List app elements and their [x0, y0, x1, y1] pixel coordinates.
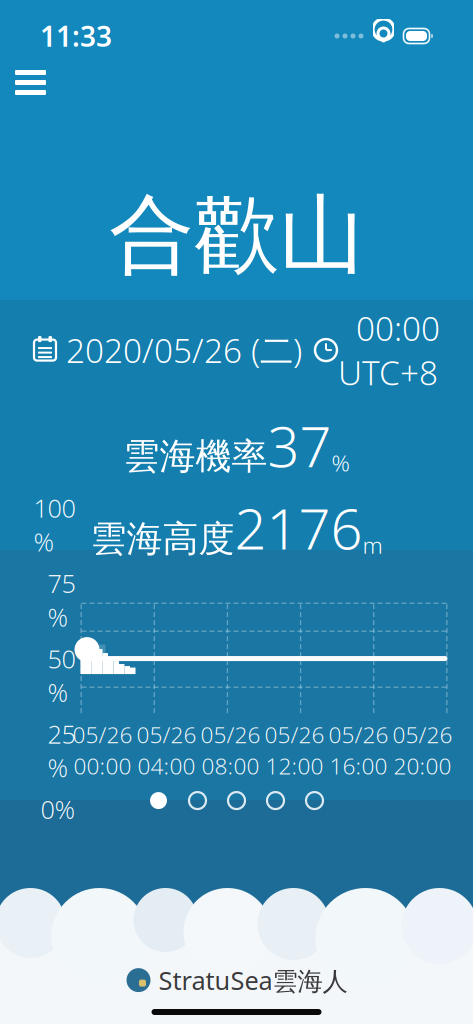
staticText: 20:00: [393, 751, 451, 781]
staticText: 雲海機率: [123, 434, 267, 479]
staticText: 50%: [47, 642, 75, 709]
staticText: 25%: [47, 717, 75, 784]
staticText: 05/26: [392, 719, 452, 750]
staticText: 00:00: [73, 751, 131, 781]
staticText: 2176: [234, 491, 362, 565]
button[interactable]: Page 3: [228, 792, 245, 809]
staticText: 0%: [40, 792, 75, 826]
staticText: 2020/05/26 (二): [57, 328, 302, 372]
staticText: 11:33: [40, 17, 112, 55]
staticText: 100%: [33, 491, 75, 558]
staticText: 08:00: [201, 751, 259, 781]
button[interactable]: Page 1: [150, 792, 167, 809]
staticText: m: [362, 530, 382, 560]
button[interactable]: Page 2: [189, 792, 206, 809]
staticText: 16:00: [329, 751, 387, 781]
staticText: %: [331, 448, 349, 478]
staticText: 04:00: [137, 751, 195, 781]
staticText: 05/26: [328, 719, 388, 750]
button[interactable]: Menu: [5, 60, 56, 105]
staticText: 12:00: [265, 751, 323, 781]
staticText: 75%: [47, 566, 75, 634]
staticText: 05/26: [72, 719, 132, 750]
staticText: 雲海高度: [90, 517, 234, 561]
button[interactable]: Page 5: [306, 792, 323, 809]
staticText: 00:00 UTC+8: [338, 306, 440, 394]
staticText: 37: [267, 408, 331, 483]
staticText: 合歡山: [109, 183, 364, 288]
staticText: 05/26: [264, 719, 324, 750]
staticText: 05/26: [136, 719, 196, 750]
staticText: StratuSea雲海人: [158, 963, 347, 997]
staticText: 05/26: [200, 719, 260, 750]
button[interactable]: Page 4: [267, 792, 284, 809]
